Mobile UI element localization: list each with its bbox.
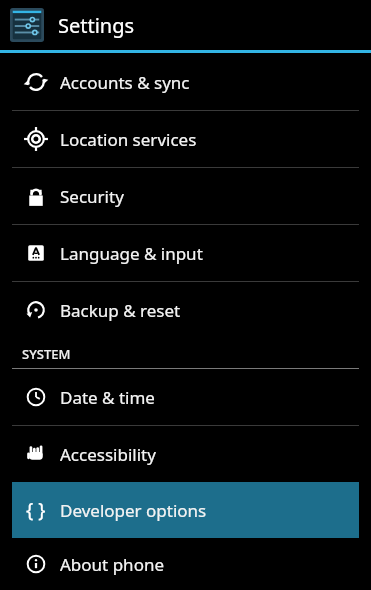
staticText: Accounts & sync [60,71,190,94]
staticText: Location services [60,128,197,151]
staticText: Accessibility [60,443,156,466]
button[interactable]: About phone [12,538,359,590]
button[interactable]: Accounts & sync [12,54,359,110]
staticText: Security [60,185,124,208]
staticText: Language & input [60,242,203,265]
staticText: Backup & reset [60,299,181,322]
button[interactable]: Backup & reset [12,282,359,338]
staticText: SYSTEM [22,345,71,363]
button[interactable]: Settings [0,0,371,50]
staticText: Date & time [60,386,155,409]
button[interactable]: Accessibility [12,426,359,482]
staticText: { } [26,497,46,523]
staticText: Settings [58,12,135,39]
staticText: About phone [60,553,165,576]
button[interactable]: Date & time [12,369,359,425]
other: Settings [10,8,44,42]
button[interactable]: Security [12,168,359,224]
button[interactable]: Language & input [12,225,359,281]
staticText: Developer options [60,499,207,522]
button[interactable]: { } [12,482,359,538]
button[interactable]: Location services [12,111,359,167]
